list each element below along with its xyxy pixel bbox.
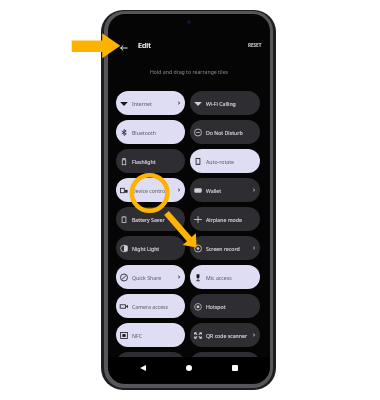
button[interactable]: Hotspot	[190, 294, 260, 318]
staticText: Auto-rotate	[206, 158, 234, 165]
button[interactable]: Alarm	[116, 352, 185, 376]
button[interactable]: RESET	[244, 40, 266, 50]
button[interactable]: Flashlight	[116, 149, 185, 173]
staticText: Mic access	[206, 274, 232, 281]
staticText: Wi-Fi Calling	[206, 100, 236, 107]
staticText: Alarm	[132, 361, 147, 368]
button[interactable]: Airplane mode	[190, 207, 260, 231]
staticText: Flashlight	[132, 158, 156, 165]
staticText: Screen record	[206, 245, 240, 252]
button[interactable]: Back	[119, 43, 128, 52]
button[interactable]: Recent apps	[226, 359, 244, 377]
staticText: Hold and drag to rearrange tiles	[108, 68, 270, 75]
staticText: Internet	[132, 100, 152, 107]
staticText: Battery Saver	[132, 216, 165, 223]
button[interactable]: Camera access	[116, 294, 185, 318]
button[interactable]: QR code scanner	[190, 323, 260, 347]
button[interactable]: Mic access	[190, 265, 260, 289]
button[interactable]: Location	[190, 352, 260, 376]
button[interactable]: Auto-rotate	[190, 149, 260, 173]
staticText: Quick Share	[132, 274, 162, 281]
button[interactable]: Bluetooth	[116, 120, 185, 144]
staticText: Hotspot	[206, 303, 226, 310]
staticText: Airplane mode	[206, 216, 242, 223]
button[interactable]: Back	[134, 359, 152, 377]
button[interactable]: Quick Share	[116, 265, 185, 289]
button[interactable]: Device controls	[116, 178, 185, 202]
button[interactable]: Home	[180, 359, 198, 377]
staticText: NFC	[132, 332, 142, 339]
staticText: Night Light	[132, 245, 160, 252]
staticText: Bluetooth	[132, 129, 157, 136]
button[interactable]: Internet	[116, 91, 185, 115]
staticText: Device controls	[132, 187, 170, 194]
button[interactable]: Wallet	[190, 178, 260, 202]
staticText: Wallet	[206, 187, 222, 194]
button[interactable]: Wi-Fi Calling	[190, 91, 260, 115]
button[interactable]: Do Not Disturb	[190, 120, 260, 144]
staticText: Do Not Disturb	[206, 129, 243, 136]
button[interactable]: Screen record	[190, 236, 260, 260]
staticText: Edit	[138, 41, 151, 51]
button[interactable]: Battery Saver	[116, 207, 185, 231]
staticText: QR code scanner	[206, 332, 248, 339]
staticText: Camera access	[132, 303, 169, 310]
staticText: RESET	[248, 42, 262, 48]
button[interactable]: NFC	[116, 323, 185, 347]
button[interactable]: Night Light	[116, 236, 185, 260]
